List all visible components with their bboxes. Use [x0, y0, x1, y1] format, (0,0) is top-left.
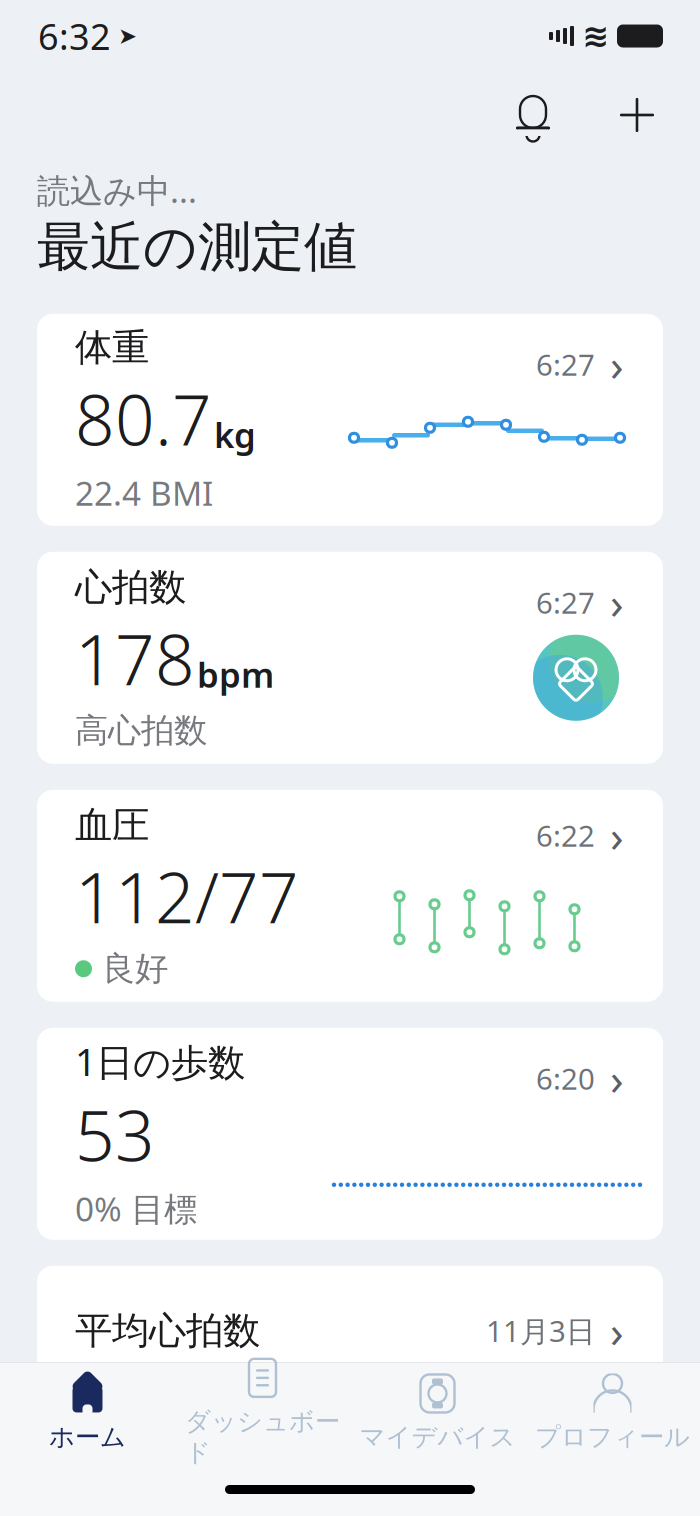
staticText: マイデバイス [359, 1421, 515, 1452]
button[interactable]: 1日の歩数 [37, 1028, 663, 1240]
staticText: 高心拍数 [75, 710, 207, 751]
staticText: › [610, 1049, 624, 1107]
button[interactable]: 血圧 [37, 790, 663, 1002]
staticText: 読込み中... [37, 168, 197, 212]
staticText: ≋ [582, 18, 609, 54]
staticText: ➤ [118, 23, 137, 49]
staticText: 6:27 [536, 345, 595, 384]
staticText: 178 [75, 612, 195, 704]
staticText: 6:22 [536, 816, 595, 855]
staticText: 53 [75, 1088, 155, 1180]
staticText: 22.4 BMI [75, 471, 213, 515]
staticText: 6:27 [536, 583, 595, 622]
button[interactable]: ダッシュボード [175, 1367, 350, 1459]
staticText: 最近の測定値 [37, 214, 357, 280]
button[interactable]: Add measurement [614, 92, 660, 138]
button[interactable]: Notifications [510, 90, 556, 140]
staticText: 11月3日 [486, 1311, 595, 1350]
button[interactable]: 体重 [37, 314, 663, 526]
staticText: › [610, 335, 624, 393]
button[interactable]: 心拍数 [37, 552, 663, 764]
staticText: 112/77 [75, 850, 299, 942]
staticText: 6:20 [536, 1059, 595, 1098]
staticText: 6:32 [38, 12, 111, 60]
staticText: 血圧 [75, 802, 149, 848]
staticText: ダッシュボード [185, 1406, 340, 1468]
staticText: プロフィール [535, 1421, 690, 1452]
staticText: 体重 [75, 325, 149, 371]
staticText: › [610, 573, 624, 631]
staticText: 1日の歩数 [75, 1037, 245, 1086]
staticText: 良好 [102, 948, 168, 989]
button[interactable]: プロフィール [525, 1367, 700, 1459]
staticText: 0% 目標 [75, 1186, 197, 1231]
staticText: 平均心拍数 [75, 1308, 260, 1354]
staticText: bpm [197, 651, 274, 697]
staticText: 77 [75, 1356, 155, 1448]
button[interactable]: マイデバイス [350, 1367, 525, 1459]
staticText: ホーム [49, 1421, 126, 1452]
staticText: 心拍数 [75, 564, 186, 610]
staticText: › [610, 1301, 624, 1360]
button[interactable]: ホーム [0, 1367, 175, 1459]
staticText: 80.7 [75, 372, 212, 465]
button[interactable]: 平均心拍数 [37, 1266, 663, 1396]
staticText: bpm [157, 1395, 234, 1441]
staticText: kg [214, 412, 256, 458]
staticText: › [610, 806, 624, 864]
